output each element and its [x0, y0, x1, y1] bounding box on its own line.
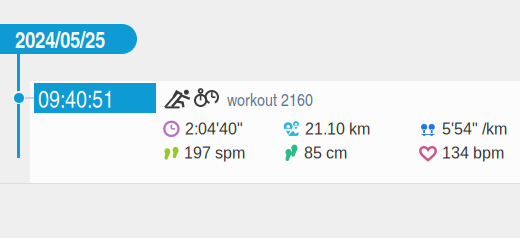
- staticText: 197 spm: [184, 144, 245, 162]
- staticText: 2024/05/25: [15, 23, 105, 55]
- staticText: 21.10 km: [305, 120, 370, 138]
- staticText: 134 bpm: [442, 144, 504, 162]
- staticText: 09:40:51: [38, 81, 114, 114]
- button[interactable]: 2024/05/25: [0, 24, 137, 54]
- staticText: workout 2160: [227, 87, 313, 111]
- staticText: 5'54" /km: [442, 120, 507, 138]
- staticText: 2:04'40": [185, 120, 243, 138]
- staticText: 85 cm: [304, 144, 347, 162]
